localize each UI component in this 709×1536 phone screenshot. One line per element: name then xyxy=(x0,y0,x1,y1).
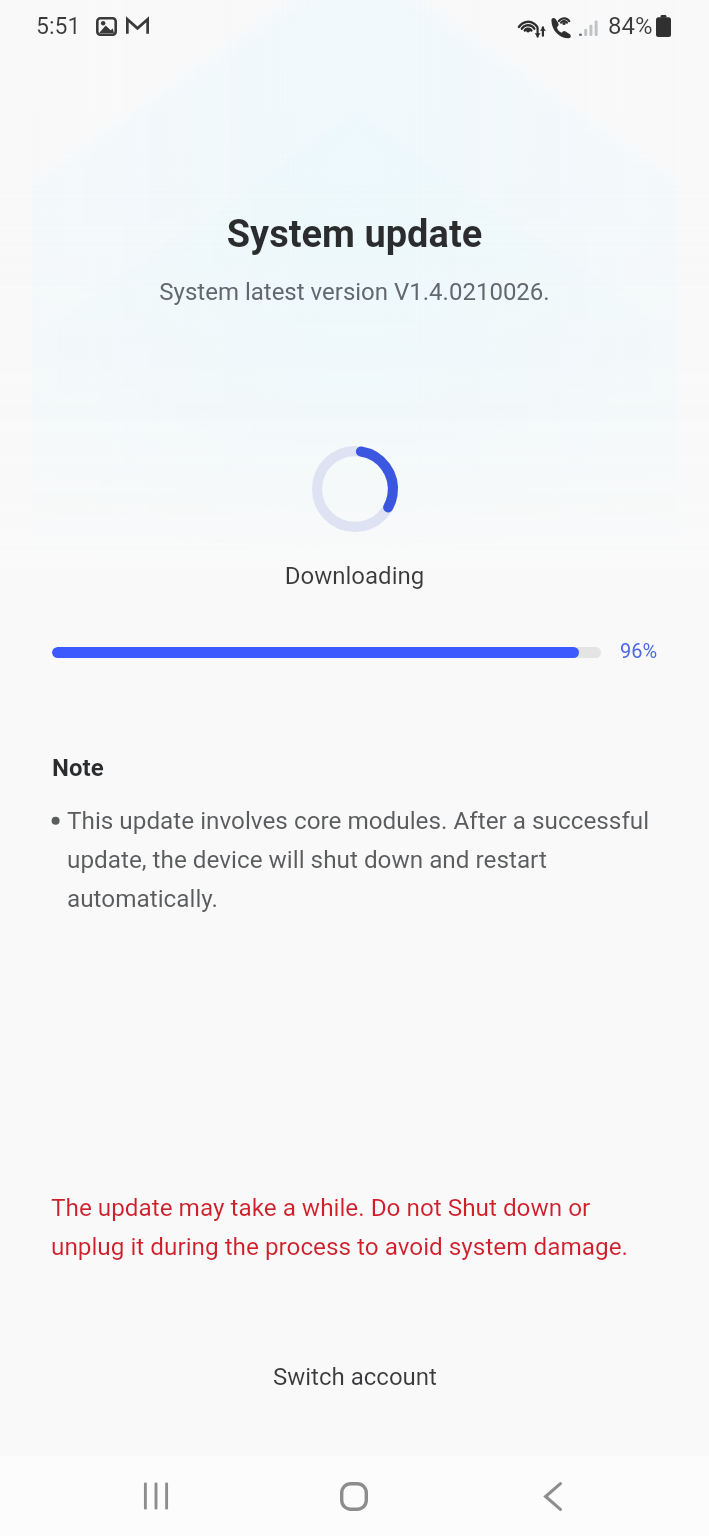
button[interactable]: Back xyxy=(487,1456,619,1536)
staticText: 84% xyxy=(608,12,653,40)
staticText: System update xyxy=(0,212,709,257)
staticText: Downloading xyxy=(0,562,709,590)
button[interactable]: Recent apps xyxy=(90,1456,222,1536)
staticText: The update may take a while. Do not Shut… xyxy=(51,1193,661,1261)
staticText: 96% xyxy=(620,639,658,662)
staticText: This update involves core modules. After… xyxy=(67,806,667,913)
button[interactable]: Switch account xyxy=(0,1349,709,1405)
staticText: Switch account xyxy=(273,1363,437,1391)
staticText: System latest version V1.4.0210026. xyxy=(0,278,709,306)
staticText: 5:51 xyxy=(36,13,81,40)
staticText: Note xyxy=(52,754,104,782)
button[interactable]: Home xyxy=(288,1456,420,1536)
